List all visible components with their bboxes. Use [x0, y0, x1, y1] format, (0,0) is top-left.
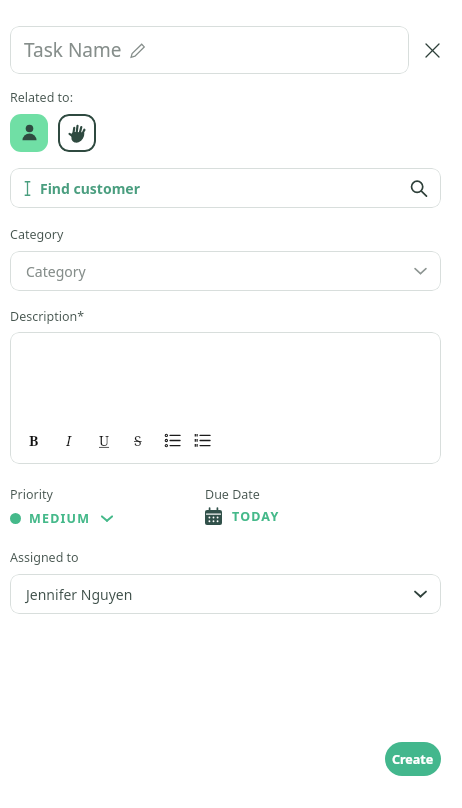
button[interactable]: Jennifer Nguyen [10, 574, 441, 614]
button[interactable]: Task Name [10, 26, 409, 74]
button[interactable]: TODAY [205, 508, 280, 525]
staticText: TODAY [232, 508, 280, 525]
button[interactable]: Close [417, 35, 447, 65]
button[interactable]: Category [10, 251, 441, 291]
staticText: U [99, 431, 110, 449]
staticText: MEDIUM [29, 510, 91, 527]
button[interactable]: S [130, 431, 146, 449]
staticText: Find customer [40, 179, 140, 198]
button[interactable]: MEDIUM [10, 510, 113, 527]
button[interactable]: I [61, 431, 77, 449]
staticText: Description* [10, 308, 85, 325]
staticText: Jennifer Nguyen [26, 585, 133, 604]
staticText: Task Name [24, 37, 122, 63]
button[interactable]: Bulleted list [163, 431, 181, 449]
staticText: Assigned to [10, 549, 79, 566]
button[interactable]: Create [385, 742, 441, 776]
staticText: Related to: [10, 89, 73, 106]
button[interactable]: Find customer [10, 168, 441, 208]
staticText: Category [26, 262, 86, 281]
button[interactable]: U [96, 431, 112, 449]
staticText: Category [10, 226, 64, 243]
button[interactable]: B [10, 332, 441, 464]
staticText: I [66, 431, 72, 449]
button[interactable]: Related to opportunity [58, 114, 96, 152]
staticText: S [134, 431, 142, 449]
staticText: Due Date [205, 486, 260, 503]
staticText: Priority [10, 486, 53, 503]
button[interactable]: B [26, 431, 42, 449]
button[interactable]: Related to contact [10, 114, 48, 152]
staticText: Create [392, 751, 434, 768]
staticText: B [29, 431, 39, 449]
button[interactable]: Numbered list [193, 431, 211, 449]
